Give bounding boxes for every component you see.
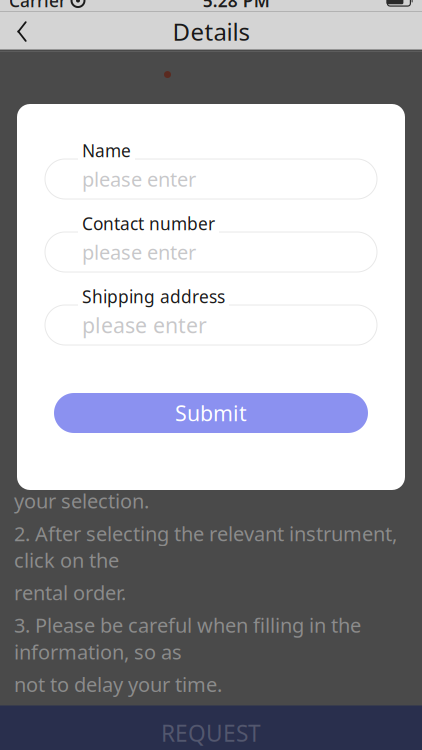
staticText: Shipping address (82, 285, 225, 308)
staticText: Contact number (82, 212, 215, 235)
button[interactable]: Back (0, 11, 44, 51)
staticText: 2. After selecting the relevant instrume… (14, 520, 397, 573)
staticText: not to delay your time. (14, 671, 222, 697)
staticText: please enter (82, 166, 196, 192)
staticText: Name (82, 139, 131, 162)
staticText: Carrier (9, 0, 66, 12)
staticText: please enter (82, 311, 207, 339)
button[interactable]: REQUEST (0, 705, 422, 750)
staticText: please enter (82, 239, 196, 265)
staticText: rental order. (14, 579, 126, 606)
staticText: your selection. (14, 487, 149, 514)
staticText: Submit (175, 399, 247, 427)
staticText: 5:28 PM (203, 0, 270, 12)
staticText: Details (172, 16, 249, 47)
staticText: REQUEST (161, 718, 261, 748)
staticText: 3. Please be careful when filling in the… (14, 612, 361, 665)
button[interactable]: Submit (54, 393, 368, 433)
